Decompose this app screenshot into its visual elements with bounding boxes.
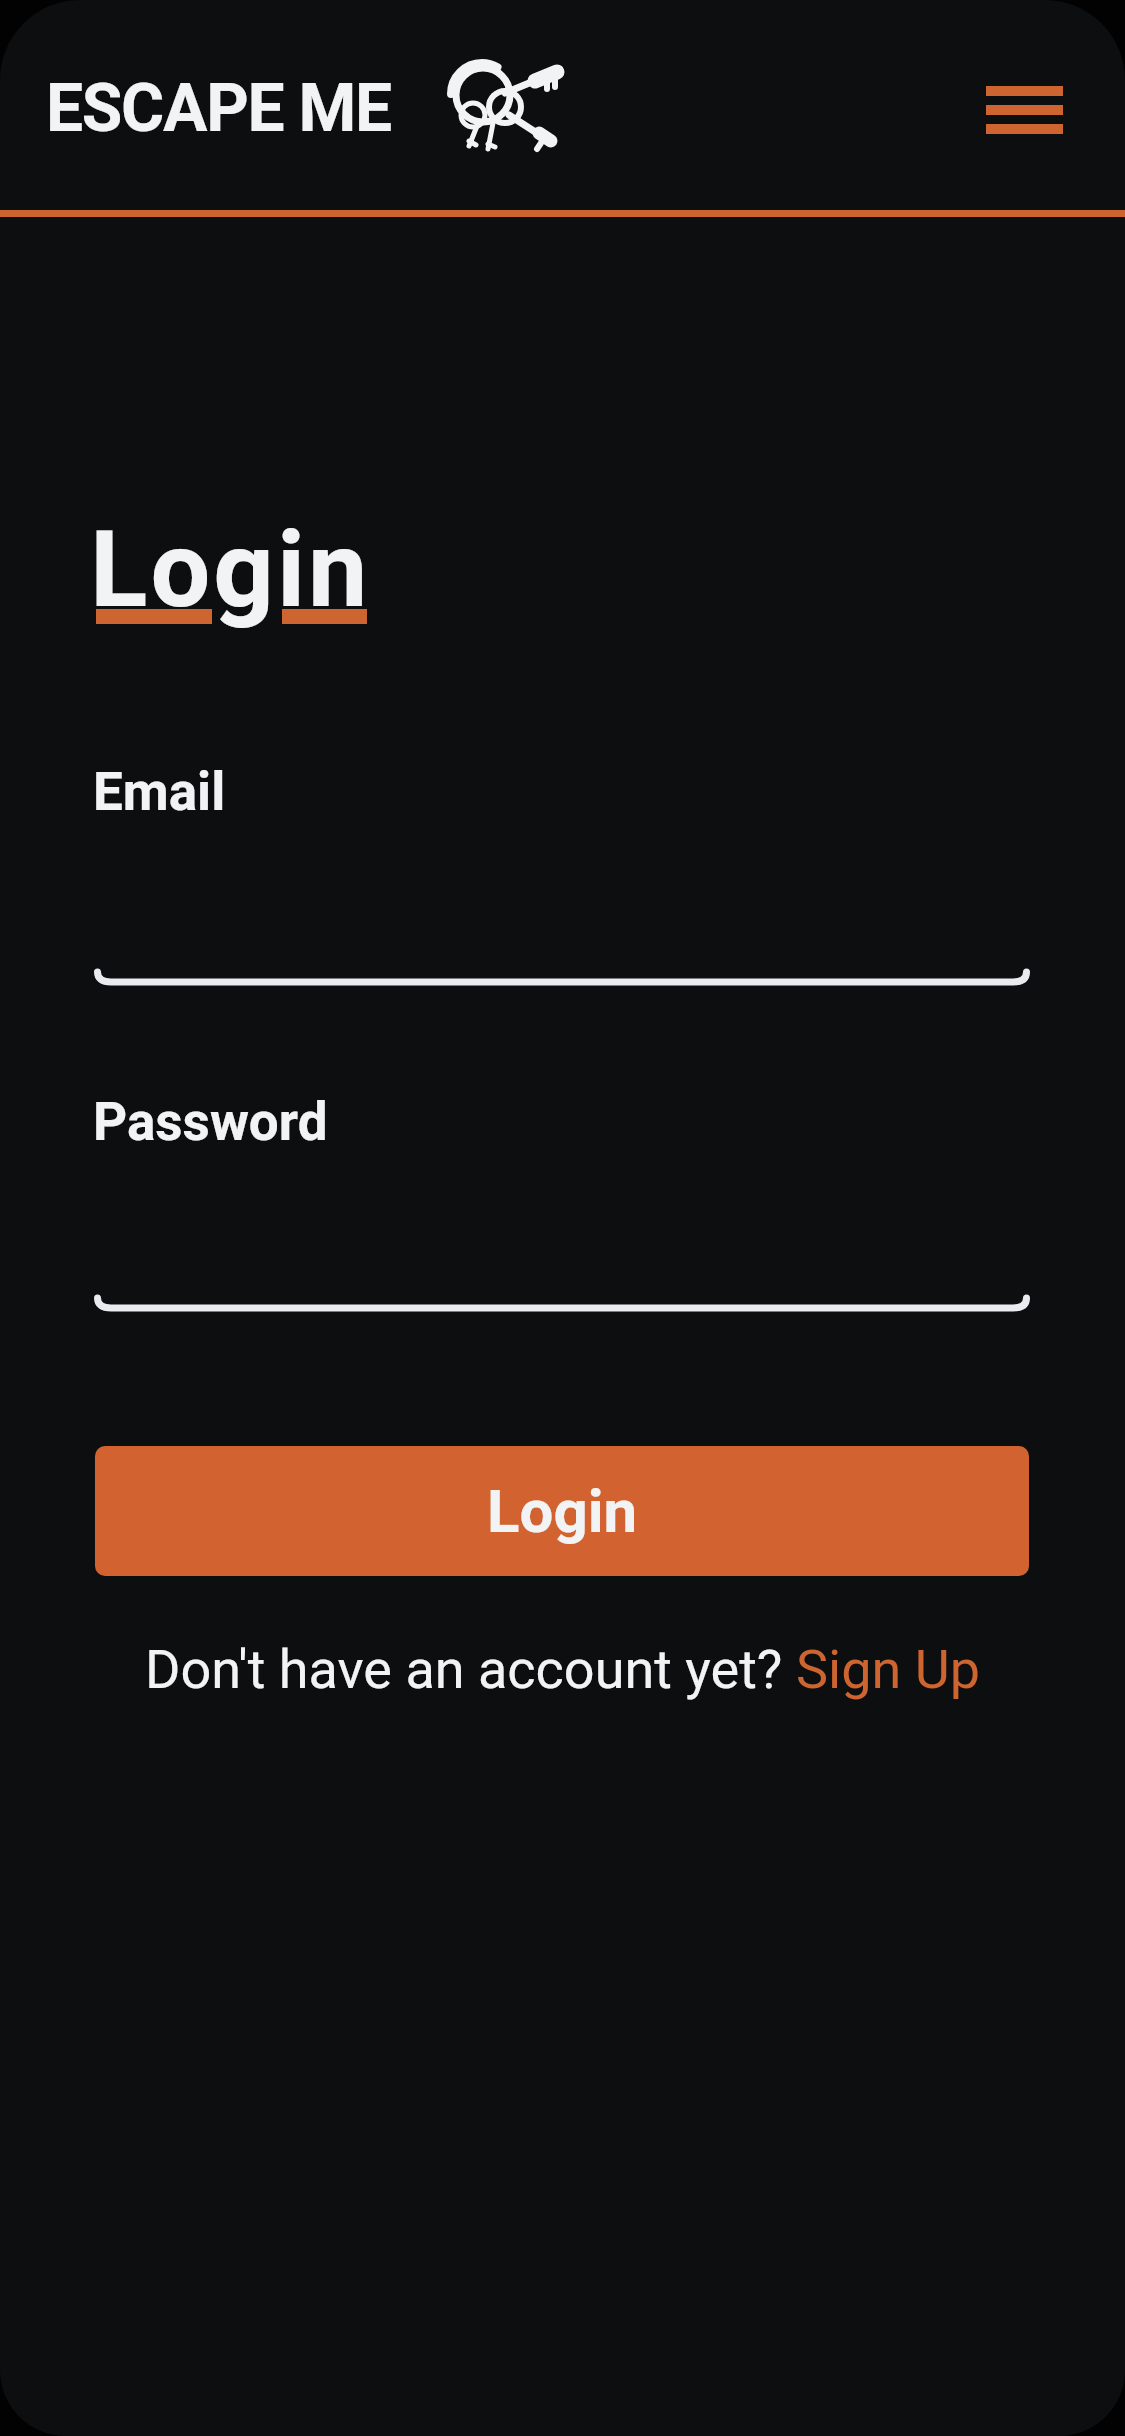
staticText: Login xyxy=(487,1476,638,1546)
button[interactable]: Login xyxy=(95,1446,1029,1576)
button[interactable] xyxy=(94,860,1030,986)
staticText: Sign Up xyxy=(796,1638,981,1701)
staticText: ESCAPE ME xyxy=(46,70,391,147)
staticText: Password xyxy=(93,1091,328,1153)
button[interactable]: Sign Up xyxy=(796,1638,981,1701)
button[interactable] xyxy=(94,1186,1030,1312)
staticText: Don't have an account yet? xyxy=(145,1638,796,1701)
staticText: Email xyxy=(93,761,226,823)
button[interactable] xyxy=(965,65,1083,155)
staticText: Login xyxy=(90,508,371,632)
